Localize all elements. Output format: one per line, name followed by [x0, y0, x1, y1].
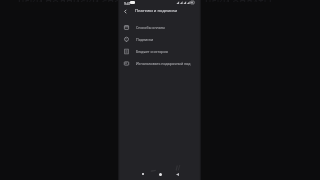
- button[interactable]: Home: [156, 170, 164, 178]
- staticText: Бюджет и история: [136, 49, 168, 54]
- staticText: 9:41: [124, 1, 131, 5]
- staticText: ЧЕКИ ПОДПИСКИ СПОСОБЫ ОПЛАТЫ: [18, 0, 190, 2]
- staticText: Использовать подарочный код: [136, 61, 191, 66]
- button[interactable]: Recent apps: [139, 170, 147, 178]
- button[interactable]: Back: [120, 6, 131, 16]
- staticText: Способы оплаты: [136, 25, 166, 30]
- button[interactable]: Подписки: [118, 33, 201, 45]
- button[interactable]: Бюджет и история: [118, 45, 201, 57]
- button[interactable]: Back: [173, 170, 181, 178]
- staticText: Подписки: [136, 37, 154, 42]
- button[interactable]: Способы оплаты: [118, 21, 201, 33]
- staticText: Платежи и подписки: [135, 8, 178, 14]
- button[interactable]: Использовать подарочный код: [118, 57, 201, 69]
- staticText: ЧЕКИ ОПЛАТЫ: [205, 0, 272, 2]
